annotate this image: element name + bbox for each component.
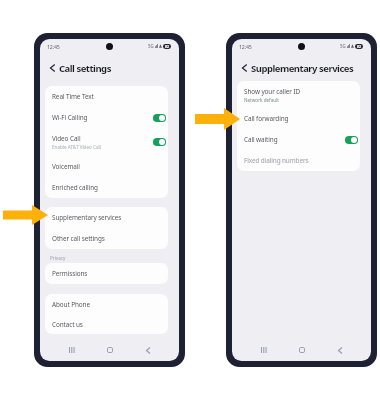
button[interactable]: Supplementary services — [45, 207, 168, 228]
button[interactable]: Recent apps — [66, 344, 78, 356]
button[interactable]: Toggle Video Call — [153, 138, 166, 146]
staticText: About Phone — [52, 300, 90, 309]
button[interactable]: About Phone — [45, 294, 168, 315]
button[interactable]: Back — [142, 344, 154, 356]
staticText: 82 — [165, 44, 169, 49]
staticText: Wi-Fi Calling — [52, 113, 88, 122]
staticText: Contact us — [52, 320, 83, 329]
button[interactable]: Toggle Call waiting — [345, 136, 358, 144]
staticText: Show your caller ID — [244, 87, 301, 96]
staticText: Call forwarding — [244, 114, 289, 123]
button[interactable]: Voicemail — [45, 156, 168, 177]
button[interactable]: Wi-Fi Calling — [45, 107, 168, 128]
staticText: Video Call — [52, 134, 81, 143]
other: Step 2 arrow — [195, 108, 240, 130]
button[interactable]: Video Call — [45, 128, 168, 156]
staticText: Permissions — [52, 269, 88, 278]
staticText: Call waiting — [244, 135, 278, 144]
staticText: Fixed dialing numbers — [244, 156, 309, 165]
staticText: Real Time Text — [52, 92, 94, 101]
staticText: Supplementary services — [52, 213, 122, 222]
button[interactable]: Show your caller ID — [237, 81, 360, 108]
other: Step 1 arrow — [3, 205, 48, 225]
button[interactable]: Navigate up — [239, 60, 249, 76]
staticText: 5G — [148, 43, 154, 49]
staticText: Enriched calling — [52, 183, 98, 192]
staticText: 5G — [340, 43, 346, 49]
button[interactable]: Permissions — [45, 263, 168, 284]
staticText: Supplementary services — [251, 62, 354, 75]
button[interactable]: Contact us — [45, 315, 168, 334]
button[interactable]: Back — [334, 344, 346, 356]
staticText: Other call settings — [52, 234, 105, 243]
button[interactable]: Call forwarding — [237, 108, 360, 129]
button[interactable]: Home — [104, 344, 116, 356]
button[interactable]: Recent apps — [258, 344, 270, 356]
staticText: Privacy — [50, 255, 66, 261]
staticText: Network default — [244, 97, 279, 103]
button[interactable]: Navigate up — [47, 60, 57, 76]
staticText: 12:45 — [239, 43, 252, 50]
button[interactable]: Real Time Text — [45, 86, 168, 107]
staticText: 12:45 — [47, 43, 60, 50]
staticText: Voicemail — [52, 162, 80, 171]
staticText: 82 — [357, 44, 361, 49]
button[interactable]: Toggle Wi-Fi Calling — [153, 114, 166, 122]
staticText: Enable AT&T Video Call — [52, 144, 101, 150]
button[interactable]: Enriched calling — [45, 177, 168, 198]
button[interactable]: Call waiting — [237, 129, 360, 150]
button[interactable]: Other call settings — [45, 228, 168, 249]
staticText: Call settings — [59, 62, 111, 75]
button[interactable]: Home — [296, 344, 308, 356]
button[interactable]: Fixed dialing numbers — [237, 150, 360, 171]
